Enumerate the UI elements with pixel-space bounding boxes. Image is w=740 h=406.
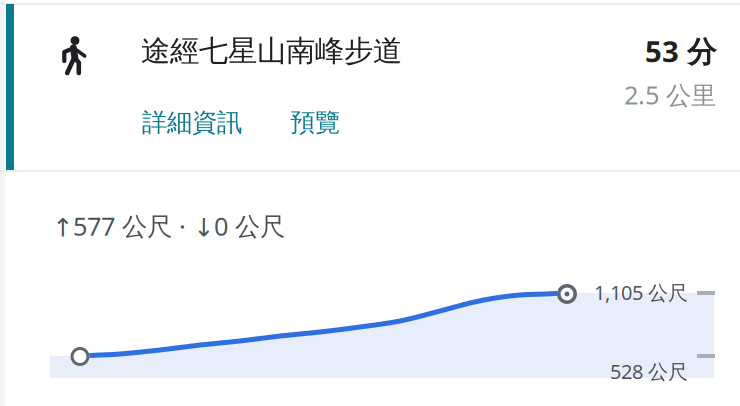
staticText: 預覽 bbox=[290, 107, 340, 138]
button[interactable]: 詳細資訊 bbox=[142, 107, 242, 138]
staticText: 2.5 公里 bbox=[624, 78, 716, 112]
staticText: 詳細資訊 bbox=[142, 107, 242, 138]
staticText: 途經七星山南峰步道 bbox=[141, 33, 402, 69]
staticText: 53 分 bbox=[645, 31, 716, 71]
button[interactable]: 預覽 bbox=[290, 107, 340, 138]
staticText: 1,105 公尺 bbox=[594, 279, 688, 306]
staticText: ↑577 公尺 · ↓0 公尺 bbox=[52, 209, 285, 243]
staticText: 528 公尺 bbox=[610, 358, 688, 385]
